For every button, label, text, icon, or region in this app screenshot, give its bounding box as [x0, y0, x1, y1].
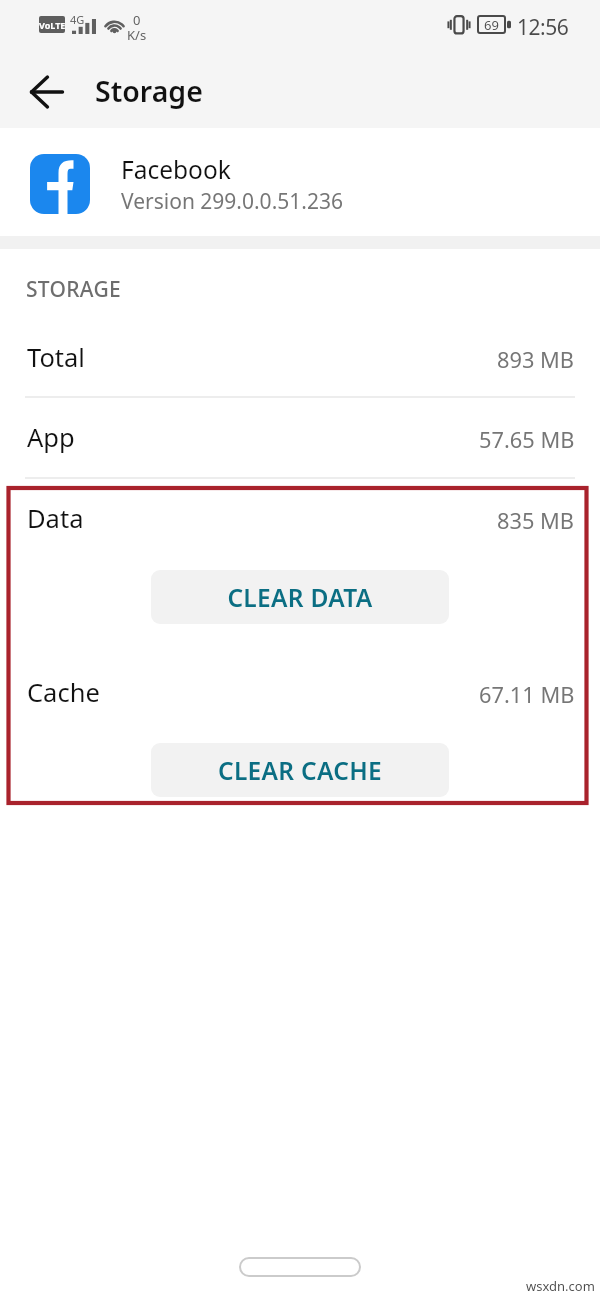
- staticText: 4G: [70, 12, 85, 27]
- staticText: 12:56: [517, 13, 569, 42]
- button[interactable]: App: [0, 401, 600, 473]
- button[interactable]: Total: [0, 321, 600, 393]
- staticText: 0: [133, 11, 141, 29]
- button[interactable]: Facebook: [0, 128, 600, 236]
- staticText: Storage: [95, 72, 203, 111]
- staticText: Cache: [27, 675, 100, 710]
- button[interactable]: Cache: [0, 656, 600, 728]
- staticText: CLEAR DATA: [227, 581, 373, 614]
- staticText: 893 MB: [497, 345, 575, 375]
- button[interactable]: CLEAR DATA: [151, 570, 449, 624]
- staticText: Total: [27, 340, 85, 375]
- staticText: Facebook: [121, 153, 231, 186]
- staticText: 67.11 MB: [479, 680, 575, 710]
- staticText: 57.65 MB: [479, 425, 575, 455]
- staticText: 835 MB: [497, 506, 575, 536]
- staticText: CLEAR CACHE: [218, 754, 382, 787]
- button[interactable]: Back: [21, 66, 73, 118]
- button[interactable]: Data: [0, 482, 600, 554]
- staticText: VoLTE: [39, 19, 65, 31]
- staticText: STORAGE: [26, 275, 122, 304]
- staticText: Data: [27, 501, 84, 536]
- staticText: K/s: [127, 26, 147, 44]
- staticText: Version 299.0.0.51.236: [121, 187, 343, 216]
- staticText: 69: [484, 16, 499, 33]
- button[interactable]: CLEAR CACHE: [151, 743, 449, 797]
- staticText: App: [27, 420, 75, 455]
- staticText: wsxdn.com: [526, 1277, 595, 1295]
